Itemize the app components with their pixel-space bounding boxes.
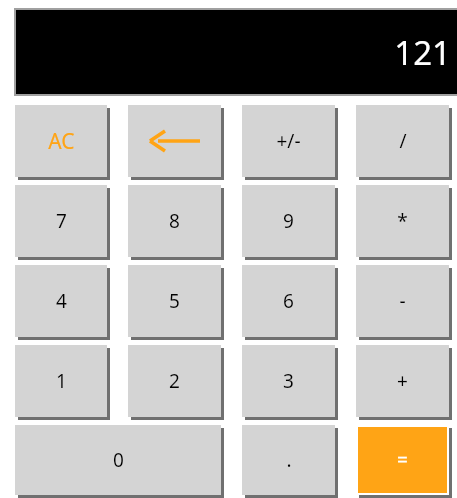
button[interactable]: 3 [242, 345, 338, 420]
staticText: 8 [169, 208, 180, 234]
button[interactable]: 0 [15, 425, 224, 498]
staticText: * [397, 208, 408, 234]
staticText: = [397, 447, 408, 473]
staticText: 7 [56, 208, 67, 234]
button[interactable]: * [356, 185, 452, 260]
staticText: . [286, 447, 292, 473]
button[interactable]: 6 [242, 265, 338, 340]
staticText: 5 [169, 288, 180, 314]
staticText: 3 [283, 368, 294, 394]
staticText: 1 [56, 368, 67, 394]
button[interactable]: Backspace [128, 105, 224, 180]
staticText: 121 [394, 30, 451, 75]
button[interactable]: AC [15, 105, 110, 180]
button[interactable]: 9 [242, 185, 338, 260]
staticText: 6 [283, 288, 294, 314]
button[interactable]: - [356, 265, 452, 340]
staticText: 2 [169, 368, 180, 394]
button[interactable]: = [356, 425, 452, 498]
button[interactable]: 4 [15, 265, 110, 340]
button[interactable]: 8 [128, 185, 224, 260]
staticText: + [397, 368, 408, 394]
button[interactable]: 2 [128, 345, 224, 420]
staticText: 4 [56, 288, 67, 314]
button[interactable]: 5 [128, 265, 224, 340]
button[interactable]: . [242, 425, 338, 498]
staticText: AC [48, 127, 75, 156]
button[interactable]: +/- [242, 105, 338, 180]
staticText: 0 [113, 447, 124, 473]
button[interactable]: + [356, 345, 452, 420]
button[interactable]: / [356, 105, 452, 180]
staticText: - [399, 288, 406, 314]
staticText: +/- [276, 128, 301, 154]
button[interactable]: 7 [15, 185, 110, 260]
staticText: / [399, 128, 407, 154]
staticText: 9 [283, 208, 294, 234]
button[interactable]: 1 [15, 345, 110, 420]
